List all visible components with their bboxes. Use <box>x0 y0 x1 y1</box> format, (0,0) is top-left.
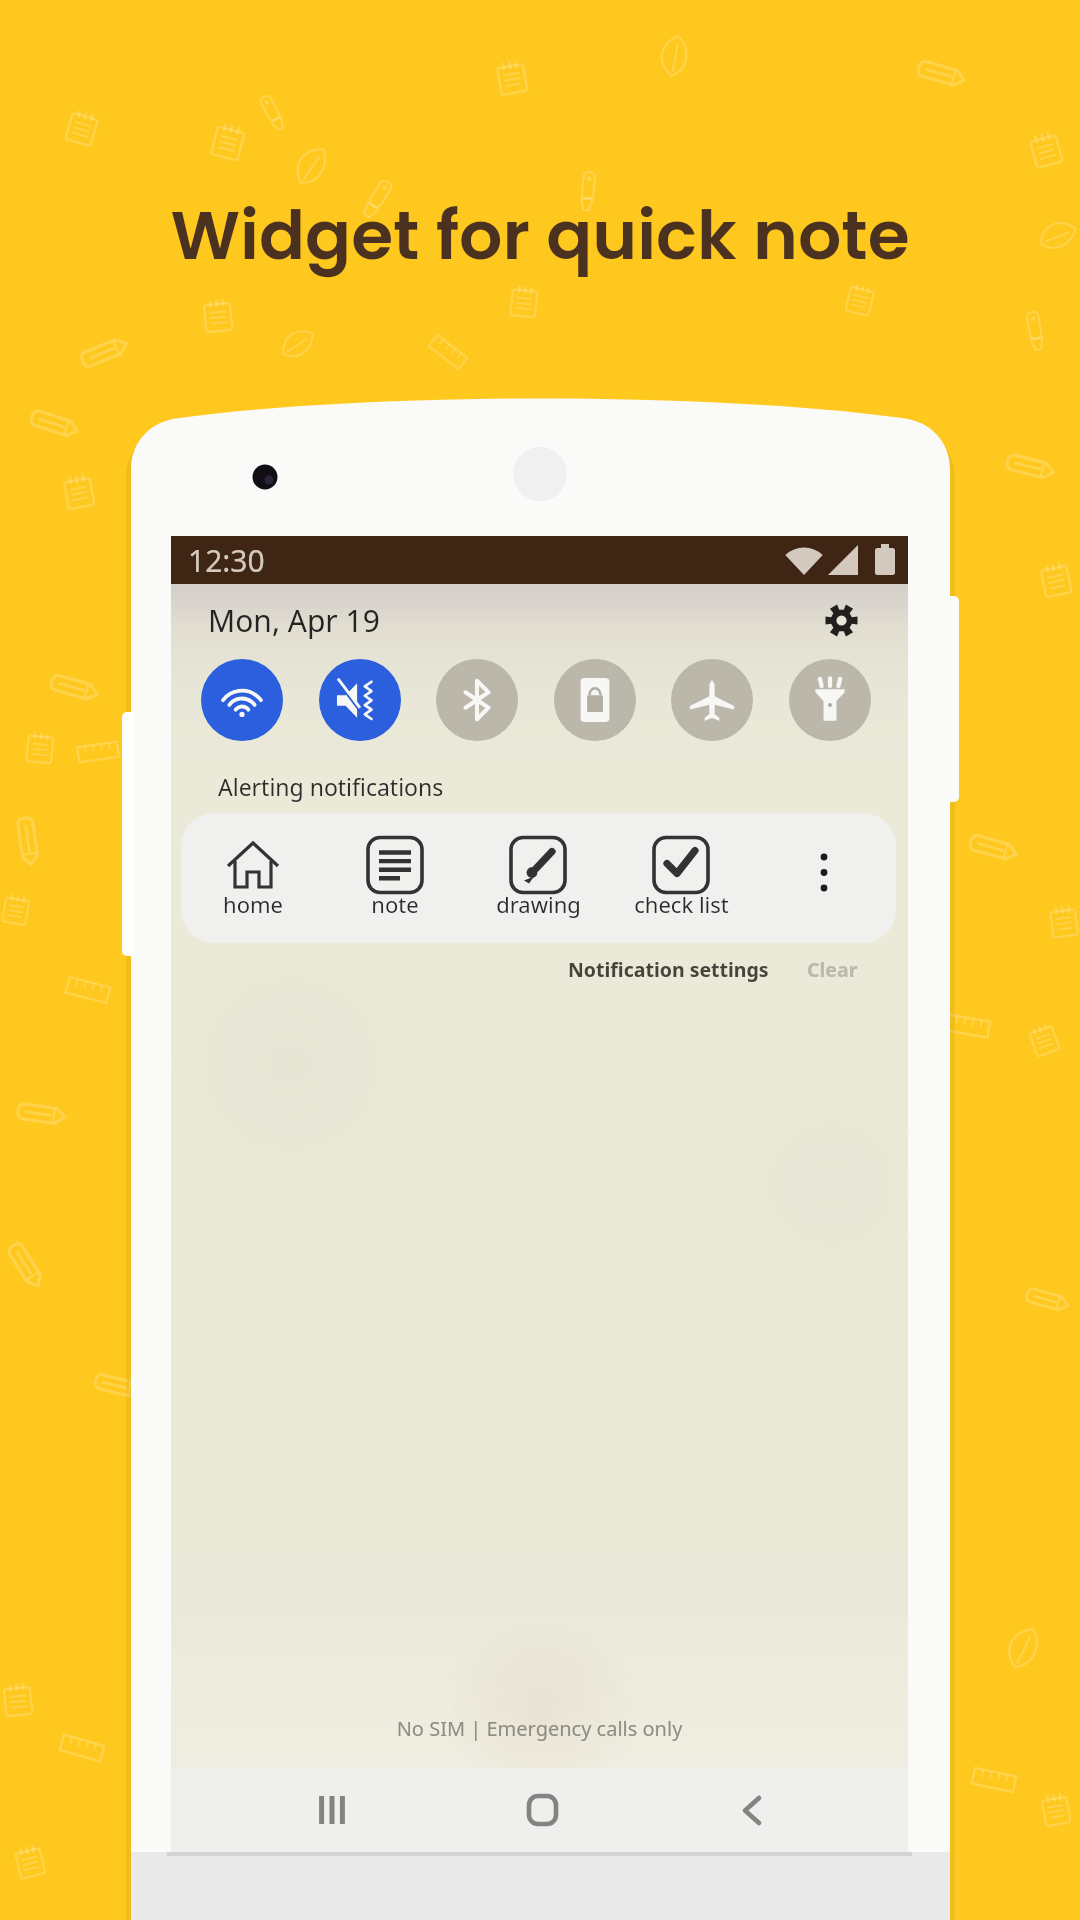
staticText: note <box>371 889 419 919</box>
button[interactable]: Home <box>502 1780 582 1840</box>
button[interactable]: drawing <box>466 813 610 943</box>
staticText: No SIM | Emergency calls only <box>171 1715 908 1742</box>
staticText: Alerting notifications <box>218 771 444 802</box>
staticText: home <box>223 889 283 919</box>
button[interactable]: Airplane mode <box>671 659 753 741</box>
button[interactable]: Sound off <box>319 659 401 741</box>
button[interactable]: home <box>181 813 324 943</box>
button[interactable]: Flashlight <box>789 659 871 741</box>
button[interactable]: Wi-Fi <box>201 659 283 741</box>
button[interactable]: Recents <box>292 1780 372 1840</box>
staticText: drawing <box>496 889 581 919</box>
button[interactable]: Auto rotate <box>554 659 636 741</box>
staticText: Widget for quick note <box>0 188 1080 283</box>
staticText: Clear <box>807 956 858 983</box>
staticText: Notification settings <box>568 956 769 983</box>
button[interactable]: Bluetooth <box>436 659 518 741</box>
staticText: 12:30 <box>188 540 265 581</box>
button[interactable]: Notification settings <box>560 948 777 991</box>
staticText: Mon, Apr 19 <box>208 600 380 641</box>
button[interactable]: note <box>324 813 466 943</box>
button[interactable]: More options <box>752 813 896 943</box>
button[interactable]: check list <box>610 813 752 943</box>
staticText: check list <box>634 889 729 919</box>
button[interactable]: Clear <box>799 948 866 991</box>
button[interactable]: Back <box>712 1780 792 1840</box>
button[interactable]: Settings <box>818 597 864 643</box>
